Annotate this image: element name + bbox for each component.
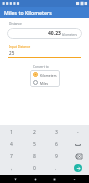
button[interactable]: 0 — [23, 162, 45, 174]
button[interactable]: Miles — [33, 80, 49, 85]
button[interactable]: 1 — [0, 127, 23, 138]
staticText: 5 — [33, 141, 36, 148]
staticText: Miles — [40, 81, 49, 85]
staticText: 0 — [33, 165, 36, 172]
staticText: 4 — [10, 141, 13, 148]
staticText: - — [77, 129, 79, 136]
staticText: Kilometers — [40, 73, 57, 77]
button[interactable]: 25 — [8, 50, 81, 58]
button[interactable]: - — [67, 127, 89, 138]
button[interactable]: 4 — [0, 138, 23, 150]
staticText: Miles to Kilometers — [4, 9, 52, 16]
button[interactable]: 8 — [23, 150, 45, 162]
button[interactable]: 40.23 — [7, 28, 82, 39]
button[interactable]: Back — [11, 175, 19, 183]
staticText: 1 — [10, 129, 13, 136]
staticText: 25 — [9, 50, 15, 56]
staticText: Input Distance — [9, 45, 31, 49]
button[interactable]: Home — [31, 175, 39, 183]
staticText: Convert to — [33, 65, 49, 69]
button[interactable]: 3 — [45, 127, 67, 138]
button[interactable]: 2 — [23, 127, 45, 138]
button[interactable]: Recents — [50, 175, 58, 183]
staticText: 6 — [55, 141, 58, 148]
staticText: Distance — [9, 22, 22, 26]
staticText: , — [11, 165, 13, 172]
button[interactable]: 5 — [23, 138, 45, 150]
staticText: kilometers — [62, 33, 77, 37]
staticText: . — [55, 165, 57, 172]
staticText: 8 — [33, 153, 36, 160]
button[interactable]: 9 — [45, 150, 67, 162]
staticText: 40.23 — [48, 30, 61, 37]
staticText: 7 — [10, 153, 13, 160]
staticText: 2 — [33, 129, 36, 136]
button[interactable]: 6 — [45, 138, 67, 150]
button[interactable] — [67, 138, 89, 150]
button[interactable]: Delete — [67, 150, 89, 162]
button[interactable]: Enter — [67, 162, 89, 174]
button[interactable]: , — [0, 162, 23, 174]
staticText: 9 — [55, 153, 58, 160]
button[interactable]: 7 — [0, 150, 23, 162]
staticText: 3 — [55, 129, 58, 136]
button[interactable]: Kilometers — [33, 72, 57, 77]
button[interactable]: More — [70, 175, 78, 183]
